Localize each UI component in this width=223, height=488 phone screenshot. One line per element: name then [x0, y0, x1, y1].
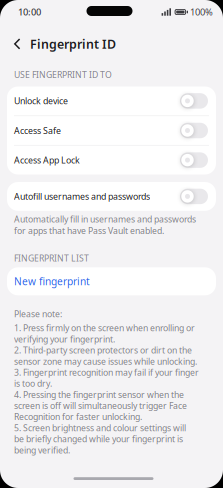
staticText: FINGERPRINT LIST [14, 252, 89, 264]
staticText: Please note: [14, 308, 62, 319]
staticText: Access Safe [14, 125, 61, 136]
button[interactable]: Access Safe [7, 116, 216, 145]
staticText: Fingerprint ID [30, 36, 116, 52]
button[interactable]: Unlock device [7, 86, 216, 115]
button[interactable]: New fingerprint [7, 267, 216, 295]
staticText: Autofill usernames and passwords [14, 191, 150, 202]
staticText: Access App Lock [14, 154, 80, 166]
staticText: 3. Fingerprint recognition may fail if y… [14, 367, 199, 389]
staticText: 2. Third-party screen protectors or dirt… [14, 345, 197, 367]
staticText: Unlock device [14, 95, 68, 107]
button[interactable]: Autofill usernames and passwords [7, 182, 216, 211]
button[interactable]: Access App Lock [7, 146, 216, 174]
staticText: Automatically fill in usernames and pass… [14, 213, 196, 236]
staticText: 100% [190, 6, 213, 18]
staticText: 10:00 [18, 6, 41, 18]
staticText: USE FINGERPRINT ID TO [14, 69, 112, 80]
staticText: New fingerprint [14, 275, 90, 288]
staticText: 4. Pressing the fingerprint sensor when … [14, 389, 187, 422]
staticText: 5. Screen brightness and colour settings… [14, 422, 186, 456]
button[interactable]: Back [0, 39, 21, 49]
staticText: 1. Press firmly on the screen when enrol… [14, 322, 195, 345]
